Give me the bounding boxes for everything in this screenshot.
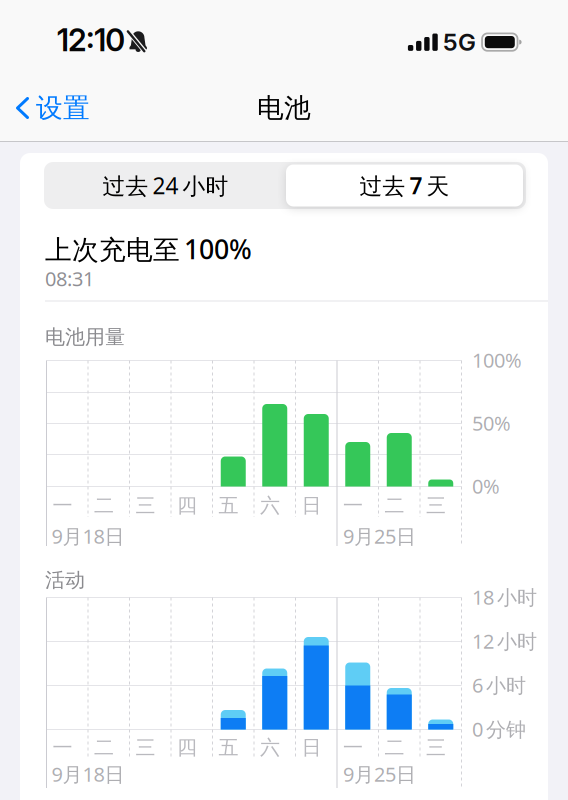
staticText: 三: [135, 735, 155, 760]
staticText: 一: [343, 493, 363, 518]
button[interactable]: 过去 7 天: [286, 164, 523, 206]
staticText: 18 小时: [472, 584, 537, 610]
staticText: 二: [384, 735, 404, 760]
staticText: 9月25日: [343, 523, 416, 549]
staticText: 日: [301, 735, 321, 760]
staticText: 9月18日: [51, 761, 124, 787]
staticText: 六: [260, 493, 280, 518]
staticText: 100%: [472, 347, 522, 373]
button[interactable]: 过去 24 小时: [47, 164, 284, 207]
staticText: 6 小时: [472, 672, 526, 698]
staticText: 0%: [472, 473, 500, 499]
staticText: 一: [52, 493, 72, 518]
staticText: 一: [343, 735, 363, 760]
staticText: 三: [426, 493, 446, 518]
staticText: 日: [301, 493, 321, 518]
staticText: 四: [177, 735, 197, 760]
staticText: 三: [426, 735, 446, 760]
staticText: 电池用量: [45, 325, 125, 349]
staticText: 0 分钟: [472, 716, 526, 742]
staticText: 08:31: [45, 265, 94, 292]
staticText: 五: [218, 735, 238, 760]
staticText: 五: [218, 493, 238, 518]
staticText: 四: [177, 493, 197, 518]
staticText: 过去 24 小时: [102, 170, 228, 200]
staticText: 活动: [45, 568, 85, 592]
button[interactable]: 设置: [16, 86, 90, 130]
staticText: 12:10: [57, 21, 125, 58]
staticText: 一: [52, 735, 72, 760]
staticText: 二: [94, 735, 114, 760]
staticText: 9月25日: [343, 761, 416, 787]
staticText: 二: [384, 493, 404, 518]
staticText: 9月18日: [51, 523, 124, 549]
staticText: 六: [260, 735, 280, 760]
staticText: 设置: [36, 92, 90, 124]
staticText: 过去 7 天: [359, 170, 449, 200]
staticText: 12 小时: [472, 628, 537, 654]
staticText: 二: [94, 493, 114, 518]
staticText: 5G: [443, 27, 476, 56]
staticText: 电池: [257, 92, 311, 124]
staticText: 三: [135, 493, 155, 518]
staticText: 50%: [472, 410, 511, 436]
staticText: 上次充电至 100%: [45, 231, 252, 267]
